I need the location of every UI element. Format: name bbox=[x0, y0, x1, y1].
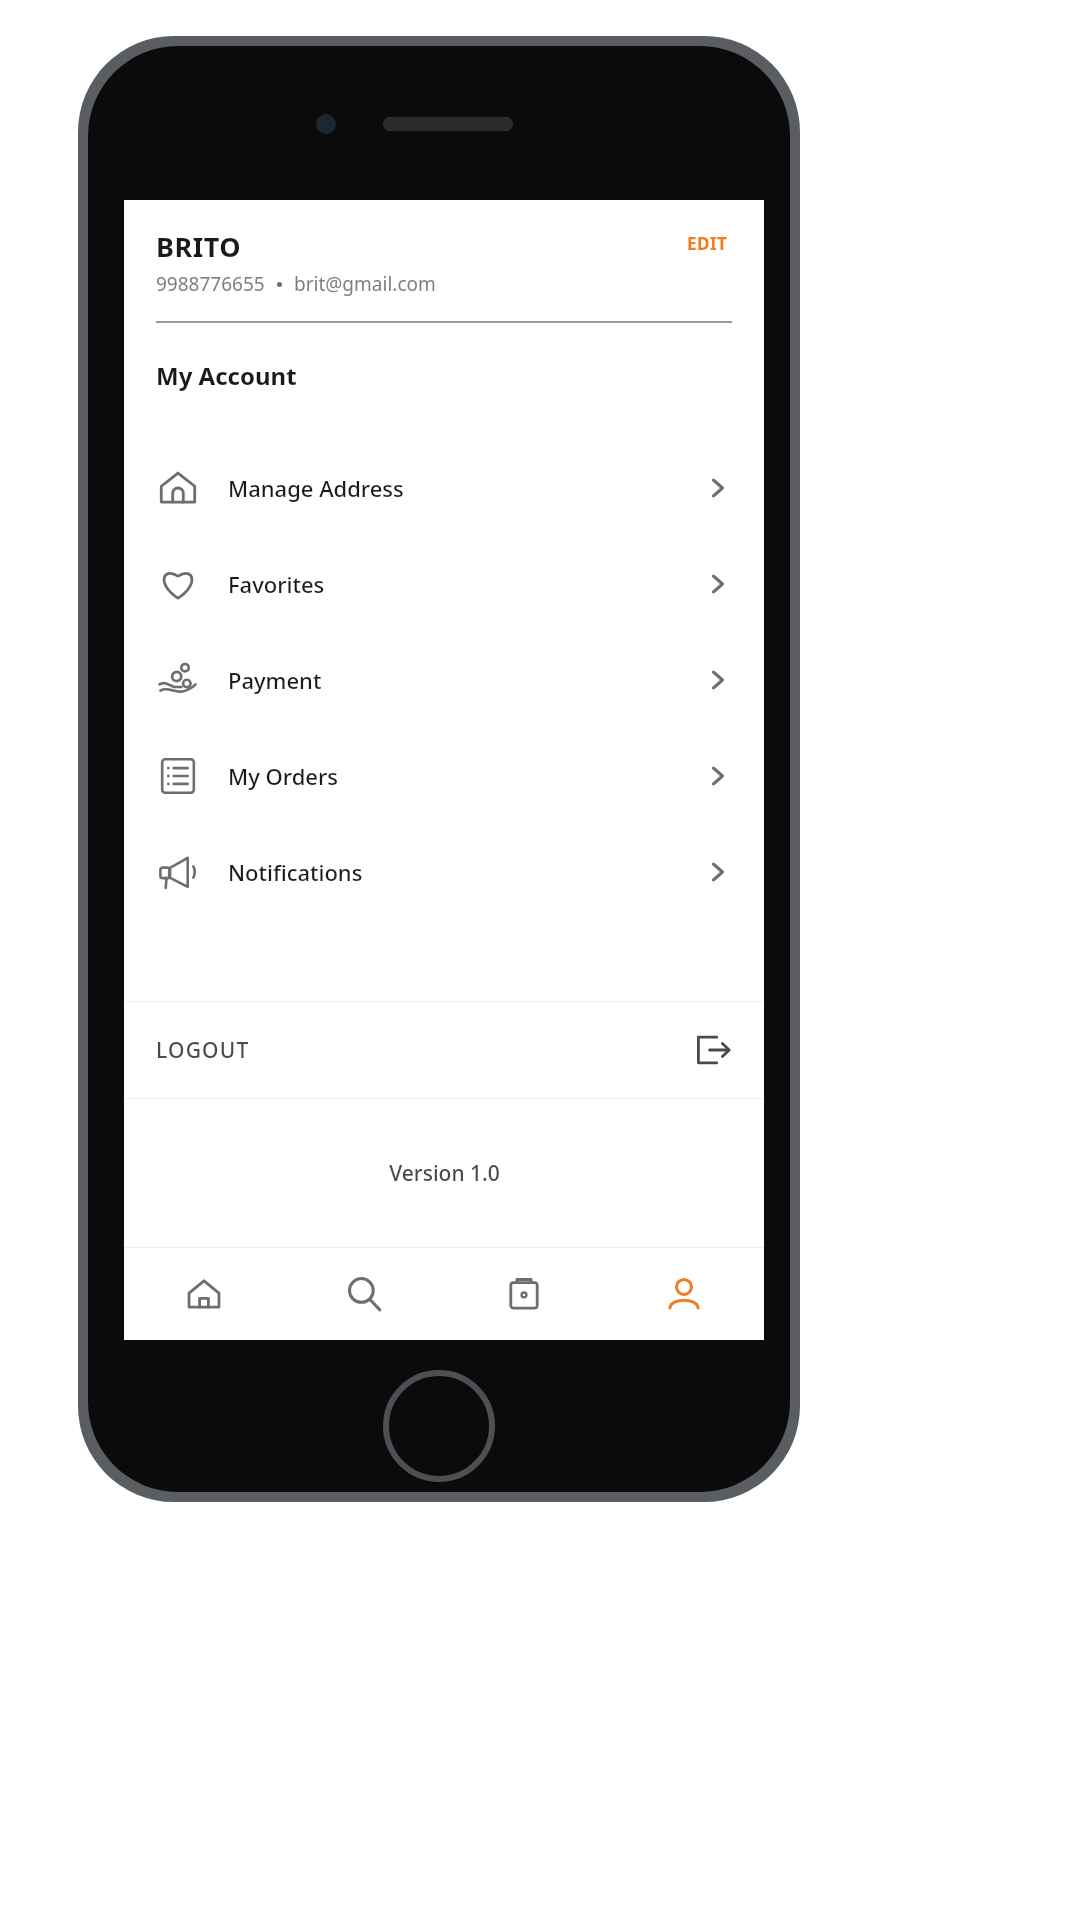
button[interactable]: Home bbox=[124, 1248, 284, 1340]
staticText: Payment bbox=[228, 665, 704, 695]
staticText: 9988776655 bbox=[156, 271, 265, 297]
staticText: BRITO bbox=[156, 228, 242, 265]
staticText: LOGOUT bbox=[156, 1036, 692, 1065]
button[interactable]: Notifications bbox=[124, 824, 764, 920]
button[interactable]: Favorites bbox=[124, 536, 764, 632]
staticText: EDIT bbox=[687, 232, 728, 255]
button[interactable]: EDIT bbox=[683, 228, 732, 259]
button[interactable]: My Orders bbox=[124, 728, 764, 824]
staticText: brit@gmail.com bbox=[294, 271, 436, 297]
button[interactable]: LOGOUT bbox=[124, 1002, 764, 1098]
button[interactable]: Manage Address bbox=[124, 440, 764, 536]
button[interactable]: Profile bbox=[604, 1248, 764, 1340]
staticText: My Orders bbox=[228, 761, 704, 791]
staticText: Favorites bbox=[228, 569, 704, 599]
staticText: My Account bbox=[156, 359, 297, 392]
staticText: Version 1.0 bbox=[389, 1159, 500, 1188]
button[interactable]: Payment bbox=[124, 632, 764, 728]
button[interactable]: Bag bbox=[444, 1248, 604, 1340]
button[interactable]: Search bbox=[284, 1248, 444, 1340]
staticText: Notifications bbox=[228, 857, 704, 887]
staticText: Manage Address bbox=[228, 473, 704, 503]
